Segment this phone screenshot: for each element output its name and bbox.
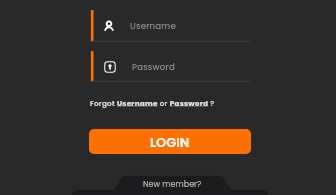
staticText: Username <box>130 20 176 32</box>
button[interactable]: New member? <box>127 177 218 191</box>
button[interactable]: Forgot Username or Password ? <box>90 98 215 108</box>
staticText: Forgot Username or Password ? <box>90 98 215 108</box>
staticText: New member? <box>143 179 202 190</box>
other: Password <box>104 61 116 73</box>
staticText: LOGIN <box>150 133 190 151</box>
button[interactable]: Password <box>93 51 250 82</box>
other: User <box>104 21 114 31</box>
button[interactable]: User <box>93 10 250 41</box>
staticText: Password <box>132 61 175 73</box>
button[interactable]: LOGIN <box>89 129 251 154</box>
